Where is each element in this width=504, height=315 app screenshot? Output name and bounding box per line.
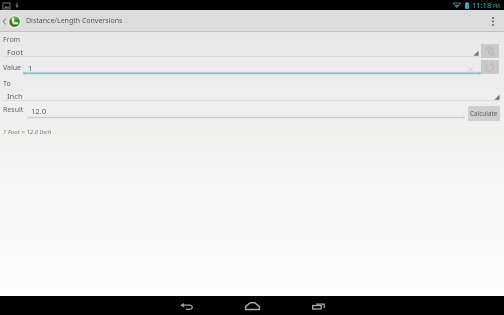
staticText: Foot <box>7 47 23 57</box>
staticText: Inch <box>7 91 23 101</box>
button[interactable]: Home <box>243 296 262 315</box>
staticText: 1 Foot = 12.0 Inch <box>3 127 52 135</box>
button[interactable]: Recent apps <box>309 296 328 315</box>
staticText: To <box>3 79 11 89</box>
button[interactable]: Back <box>177 296 196 315</box>
staticText: From <box>3 35 21 45</box>
button[interactable]: More options <box>482 10 504 32</box>
button[interactable]: Swap units <box>481 44 499 58</box>
staticText: Result <box>3 105 24 115</box>
staticText: 1 <box>28 63 33 73</box>
button[interactable]: From unit <box>0 45 504 57</box>
button[interactable]: Calculate <box>468 106 500 121</box>
staticText: 11:18 <box>472 0 492 10</box>
other: Value field <box>0 71 504 76</box>
staticText: Calculate <box>470 109 498 118</box>
staticText: Distance/Length Conversions <box>26 16 123 26</box>
button[interactable]: Navigate up <box>0 10 8 32</box>
staticText: PM <box>493 3 500 9</box>
button[interactable]: To unit <box>0 89 504 101</box>
staticText: Value <box>3 63 22 73</box>
button[interactable]: Reset <box>481 60 499 74</box>
staticText: 12.0 <box>31 106 47 116</box>
